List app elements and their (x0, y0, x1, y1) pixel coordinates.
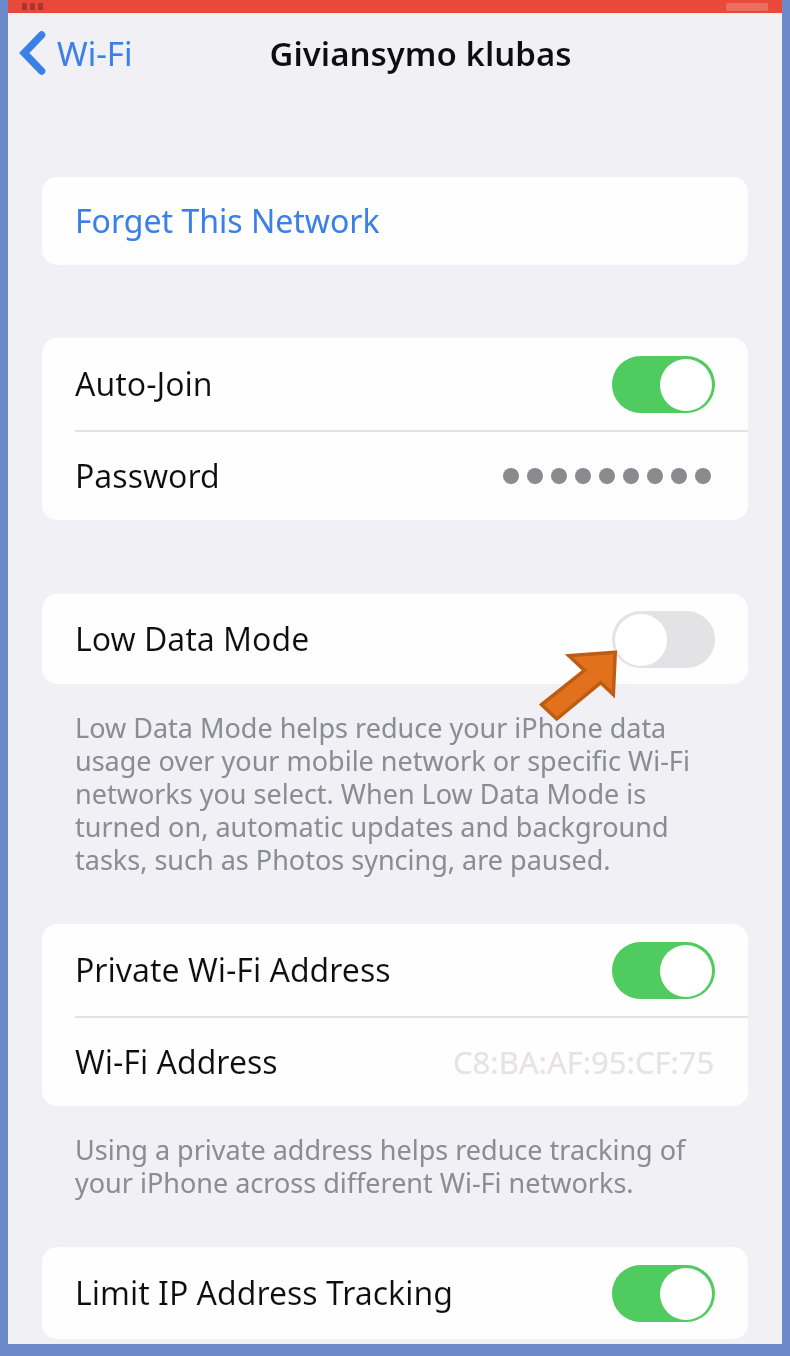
staticText: Using a private address helps reduce tra… (75, 1131, 722, 1201)
staticText: C8:BA:AF:95:CF:75 (453, 1041, 715, 1083)
button[interactable]: Auto-Join (42, 338, 748, 430)
button[interactable]: Low Data Mode (42, 594, 748, 684)
staticText: Low Data Mode helps reduce your iPhone d… (75, 709, 722, 878)
staticText: Limit IP Address Tracking (75, 1271, 453, 1315)
button[interactable]: Limit IP Address Tracking (612, 1265, 715, 1322)
button[interactable]: Private Wi-Fi Address (42, 924, 748, 1016)
button[interactable]: Forget This Network (42, 177, 748, 265)
staticText: Forget This Network (75, 199, 380, 243)
button[interactable]: Limit IP Address Tracking (42, 1247, 748, 1339)
staticText: Low Data Mode (75, 617, 310, 661)
button[interactable]: Auto-Join (612, 356, 715, 413)
staticText: Wi-Fi Address (75, 1040, 278, 1084)
staticText: Private Wi-Fi Address (75, 948, 391, 992)
staticText: Password (75, 454, 220, 498)
staticText: Auto-Join (75, 362, 213, 406)
button[interactable]: Wi-Fi Address (42, 1018, 748, 1106)
button[interactable]: Wi-Fi (8, 13, 145, 93)
button[interactable]: Low Data Mode (612, 611, 715, 668)
staticText: Giviansymo klubas (269, 31, 572, 76)
button[interactable]: Private Wi-Fi Address (612, 942, 715, 999)
staticText: Wi-Fi (57, 31, 133, 76)
button[interactable]: Password (42, 432, 748, 520)
